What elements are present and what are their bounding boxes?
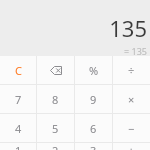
button[interactable]: 3: [75, 143, 112, 150]
staticText: 7: [15, 92, 22, 107]
staticText: %: [89, 63, 99, 78]
button[interactable]: 9: [75, 85, 112, 113]
button[interactable]: −: [113, 114, 150, 142]
button[interactable]: Backspace: [37, 56, 74, 84]
staticText: 9: [90, 92, 97, 107]
staticText: 8: [52, 92, 59, 107]
staticText: C: [15, 63, 22, 78]
button[interactable]: 7: [0, 85, 36, 113]
staticText: 135: [109, 13, 147, 43]
staticText: ÷: [128, 63, 135, 78]
button[interactable]: 2: [37, 143, 74, 150]
staticText: 1: [15, 143, 22, 150]
staticText: 6: [90, 121, 97, 136]
button[interactable]: 1: [0, 143, 36, 150]
button[interactable]: ×: [113, 85, 150, 113]
button[interactable]: C: [0, 56, 36, 84]
button[interactable]: +: [113, 143, 150, 150]
staticText: = 135: [124, 45, 147, 56]
staticText: −: [128, 121, 135, 136]
button[interactable]: 4: [0, 114, 36, 142]
button[interactable]: %: [75, 56, 112, 84]
button[interactable]: 8: [37, 85, 74, 113]
staticText: ×: [128, 92, 135, 107]
button[interactable]: 6: [75, 114, 112, 142]
staticText: 4: [15, 121, 22, 136]
staticText: 2: [52, 143, 59, 150]
staticText: +: [128, 143, 135, 150]
staticText: 5: [52, 121, 59, 136]
button[interactable]: 5: [37, 114, 74, 142]
button[interactable]: ÷: [113, 56, 150, 84]
staticText: 3: [90, 143, 97, 150]
